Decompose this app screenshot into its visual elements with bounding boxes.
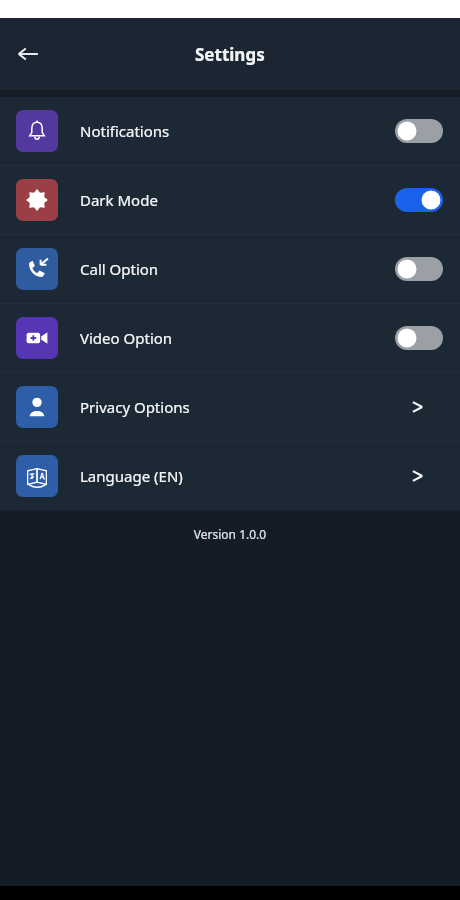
staticText: Dark Mode <box>80 190 394 210</box>
staticText: Video Option <box>80 328 394 348</box>
button[interactable]: Notifications <box>0 97 460 165</box>
staticText: Language (EN) <box>80 466 394 486</box>
button[interactable]: Privacy Options <box>0 373 460 441</box>
button[interactable]: Dark Mode <box>0 166 460 234</box>
button[interactable]: Video Option <box>0 304 460 372</box>
staticText: Version 1.0.0 <box>0 526 460 542</box>
staticText: Notifications <box>80 121 394 141</box>
staticText: Call Option <box>80 259 394 279</box>
button[interactable]: Language (EN) <box>0 442 460 510</box>
button[interactable]: Back <box>8 34 48 74</box>
staticText: Privacy Options <box>80 397 394 417</box>
button[interactable]: Call Option <box>0 235 460 303</box>
button[interactable]: Off <box>394 324 444 352</box>
button[interactable]: Open <box>394 462 444 490</box>
button[interactable]: On <box>394 186 444 214</box>
button[interactable]: Off <box>394 117 444 145</box>
staticText: Settings <box>195 43 265 66</box>
button[interactable]: Open <box>394 393 444 421</box>
button[interactable]: Off <box>394 255 444 283</box>
